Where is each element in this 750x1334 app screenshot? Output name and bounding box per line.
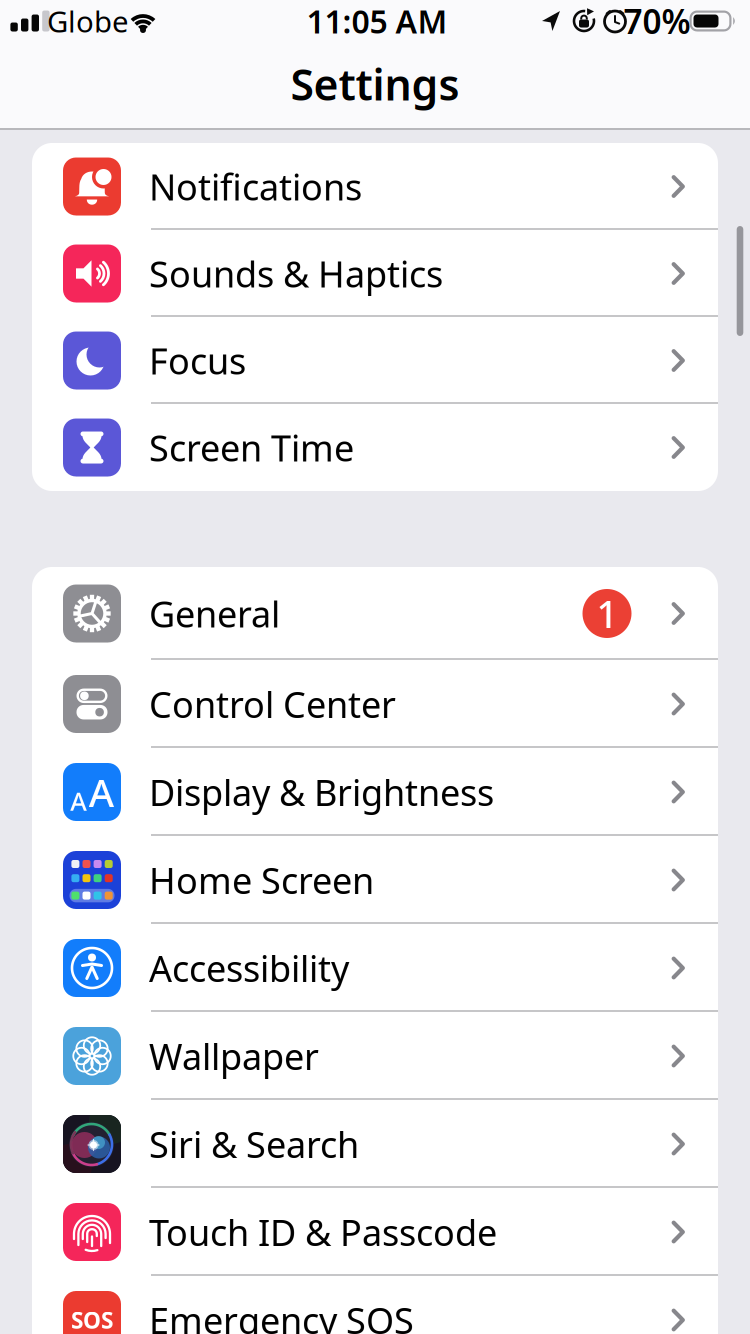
staticText: Accessibility <box>149 944 349 992</box>
staticText: Display & Brightness <box>149 768 494 816</box>
staticText: Focus <box>149 337 246 384</box>
staticText: Globe <box>47 1 129 40</box>
button[interactable]: Wallpaper <box>32 1012 718 1100</box>
button[interactable]: Siri & Search <box>32 1100 718 1188</box>
button[interactable]: Accessibility <box>32 924 718 1012</box>
button[interactable]: Touch ID & Passcode <box>32 1188 718 1276</box>
staticText: Control Center <box>149 680 396 728</box>
button[interactable]: A <box>32 748 718 836</box>
staticText: Wallpaper <box>149 1032 319 1080</box>
staticText: Notifications <box>149 163 362 210</box>
staticText: Touch ID & Passcode <box>149 1208 497 1256</box>
staticText: 1 <box>596 589 617 638</box>
button[interactable]: Control Center <box>32 660 718 748</box>
button[interactable]: Sounds & Haptics <box>32 230 718 317</box>
button[interactable]: Home Screen <box>32 836 718 924</box>
button[interactable]: SOS <box>32 1276 718 1334</box>
staticText: Home Screen <box>149 856 374 904</box>
staticText: 70% <box>623 0 690 43</box>
staticText: 11:05 AM <box>306 0 447 42</box>
staticText: General <box>149 590 280 637</box>
staticText: Siri & Search <box>149 1120 359 1168</box>
button[interactable]: General <box>32 567 718 660</box>
staticText: Sounds & Haptics <box>149 250 443 297</box>
button[interactable]: Focus <box>32 317 718 404</box>
button[interactable]: Notifications <box>32 143 718 230</box>
staticText: Settings <box>290 56 459 112</box>
staticText: A <box>70 784 87 818</box>
staticText: Screen Time <box>149 424 354 471</box>
staticText: SOS <box>71 1305 113 1334</box>
button[interactable]: Screen Time <box>32 404 718 491</box>
staticText: Emergency SOS <box>149 1296 414 1334</box>
staticText: A <box>89 766 114 818</box>
